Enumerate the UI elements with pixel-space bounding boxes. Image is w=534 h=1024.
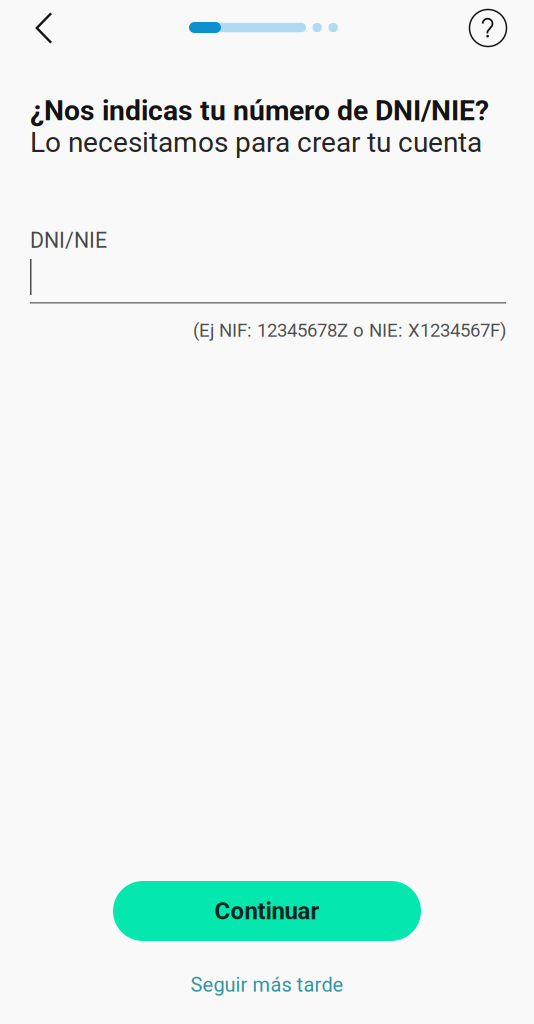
staticText: Seguir más tarde — [190, 973, 343, 997]
button[interactable]: DNI/NIE — [30, 231, 506, 304]
button[interactable]: Help — [462, 0, 514, 56]
staticText: DNI/NIE — [30, 228, 107, 253]
staticText: Lo necesitamos para crear tu cuenta — [30, 126, 482, 159]
staticText: ¿Nos indicas tu número de DNI/NIE? — [30, 94, 489, 127]
button[interactable]: Back — [18, 0, 70, 56]
button[interactable]: Seguir más tarde — [0, 965, 534, 1005]
staticText: (Ej NIF: 12345678Z o NIE: X1234567F) — [193, 320, 506, 341]
button[interactable]: Continuar — [113, 881, 421, 941]
staticText: Continuar — [214, 897, 319, 925]
